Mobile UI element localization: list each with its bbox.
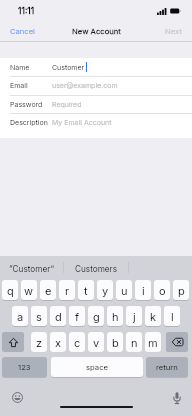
staticText: user@example.com (52, 81, 118, 89)
staticText: s (36, 310, 42, 323)
button[interactable]: Next (158, 21, 192, 41)
staticText: Customer (52, 63, 85, 71)
button[interactable]: v (88, 332, 104, 352)
staticText: t (84, 284, 88, 297)
staticText: h (112, 310, 119, 323)
staticText: p (178, 284, 185, 297)
button[interactable]: Backspace (166, 332, 188, 352)
staticText: m (148, 336, 158, 349)
staticText: k (150, 310, 157, 323)
staticText: Email (10, 81, 28, 89)
button[interactable] (128, 256, 192, 281)
button[interactable]: Customers (64, 256, 129, 281)
button[interactable]: z (31, 332, 47, 352)
staticText: j (133, 310, 136, 323)
staticText: Required (52, 100, 82, 108)
button[interactable]: x (50, 332, 66, 352)
staticText: c (74, 336, 81, 349)
staticText: “Customer” (9, 264, 55, 274)
staticText: q (7, 284, 14, 297)
button[interactable]: r (59, 280, 75, 300)
button[interactable]: Name (0, 58, 192, 76)
staticText: Name (10, 63, 30, 71)
staticText: g (93, 310, 100, 323)
staticText: b (112, 336, 119, 349)
button[interactable]: 123 (2, 357, 47, 377)
staticText: a (17, 310, 24, 323)
button[interactable]: “Customer” (0, 256, 64, 281)
button[interactable]: f (69, 306, 85, 326)
staticText: 123 (18, 363, 31, 372)
staticText: n (131, 336, 138, 349)
staticText: l (171, 310, 174, 323)
staticText: space (86, 363, 109, 372)
button[interactable]: return (146, 357, 188, 377)
button[interactable]: s (31, 306, 47, 326)
staticText: z (36, 336, 43, 349)
button[interactable]: h (107, 306, 123, 326)
staticText: return (156, 363, 178, 372)
button[interactable]: i (135, 280, 151, 300)
button[interactable]: Dictation (173, 392, 181, 404)
button[interactable]: u (116, 280, 132, 300)
button[interactable]: q (2, 280, 18, 300)
staticText: 11:11 (18, 6, 35, 16)
staticText: o (159, 284, 166, 297)
staticText: y (102, 284, 109, 297)
staticText: New Account (72, 27, 121, 36)
staticText: Password (10, 100, 43, 108)
staticText: Customers (75, 264, 118, 274)
button[interactable]: w (21, 280, 37, 300)
staticText: v (93, 336, 100, 349)
staticText: i (142, 284, 145, 297)
button[interactable]: y (97, 280, 113, 300)
button[interactable]: p (173, 280, 189, 300)
button[interactable]: j (126, 306, 142, 326)
staticText: x (55, 336, 62, 349)
staticText: u (121, 284, 128, 297)
button[interactable]: a (12, 306, 28, 326)
button[interactable]: Email (0, 76, 192, 94)
staticText: d (55, 310, 62, 323)
button[interactable]: c (69, 332, 85, 352)
button[interactable]: b (107, 332, 123, 352)
staticText: f (75, 310, 80, 323)
button[interactable]: l (164, 306, 180, 326)
button[interactable]: d (50, 306, 66, 326)
staticText: Description (10, 118, 48, 126)
button[interactable]: Password (0, 95, 192, 113)
staticText: r (65, 284, 70, 297)
button[interactable]: e (40, 280, 56, 300)
button[interactable]: Emoji (12, 392, 23, 403)
button[interactable]: space (51, 357, 143, 377)
staticText: Next (165, 27, 182, 36)
button[interactable]: o (154, 280, 170, 300)
button[interactable]: Shift (2, 332, 24, 352)
button[interactable]: Cancel (0, 21, 42, 41)
staticText: Cancel (10, 27, 35, 36)
button[interactable]: Description (0, 113, 192, 131)
button[interactable]: g (88, 306, 104, 326)
staticText: w (24, 284, 34, 297)
button[interactable]: k (145, 306, 161, 326)
staticText: My Email Account (52, 118, 112, 126)
button[interactable]: n (126, 332, 142, 352)
staticText: e (45, 284, 52, 297)
button[interactable]: m (145, 332, 161, 352)
button[interactable]: t (78, 280, 94, 300)
